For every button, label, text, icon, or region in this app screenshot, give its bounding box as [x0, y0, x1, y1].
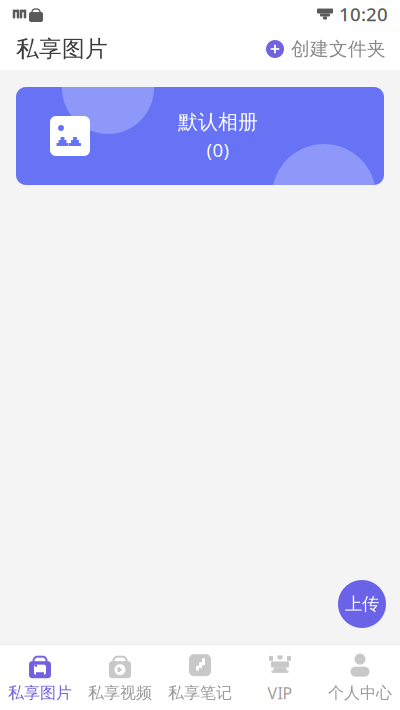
button[interactable]: VIP: [240, 645, 320, 710]
button[interactable]: 创建文件夹: [266, 29, 400, 68]
staticText: 创建文件夹: [291, 37, 386, 60]
staticText: 私享图片: [8, 683, 72, 703]
staticText: 私享图片: [16, 35, 108, 63]
staticText: VIP: [267, 682, 292, 704]
staticText: (0): [206, 137, 229, 162]
button[interactable]: 默认相册: [16, 87, 384, 185]
button[interactable]: 私享笔记: [160, 645, 240, 710]
staticText: 私享笔记: [168, 683, 232, 703]
button[interactable]: 个人中心: [320, 645, 400, 710]
staticText: 默认相册: [178, 110, 258, 134]
staticText: 10:20: [339, 2, 388, 26]
staticText: 上传: [345, 593, 379, 615]
button[interactable]: 上传: [338, 580, 386, 628]
button[interactable]: 私享视频: [80, 645, 160, 710]
staticText: 个人中心: [328, 683, 392, 703]
staticText: 私享视频: [88, 683, 152, 703]
button[interactable]: 私享图片: [0, 645, 80, 710]
